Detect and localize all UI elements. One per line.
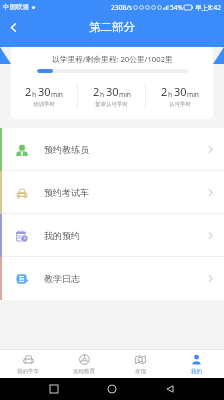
button[interactable]: 发现: [112, 350, 168, 378]
staticText: 中国联通: [3, 3, 29, 11]
button[interactable]: 预约考试车: [0, 171, 224, 214]
staticText: h: [168, 90, 174, 99]
staticText: 教学日志: [44, 273, 80, 284]
staticText: 30: [174, 84, 187, 99]
staticText: 30: [106, 84, 119, 99]
other: Recents: [50, 385, 58, 393]
staticText: 我的预约: [44, 230, 80, 241]
staticText: 远程教育: [73, 368, 95, 375]
staticText: min: [119, 90, 131, 99]
staticText: 2: [25, 84, 32, 99]
button[interactable]: 远程教育: [56, 350, 112, 378]
staticText: 发现: [135, 368, 146, 375]
staticText: 培训学时: [33, 101, 55, 108]
staticText: min: [51, 90, 63, 99]
staticText: 认可学时: [169, 101, 191, 108]
button[interactable]: 我的学车: [0, 350, 56, 378]
button[interactable]: 我的预约: [0, 214, 224, 257]
other: Back: [166, 385, 174, 393]
staticText: 预约教练员: [44, 144, 89, 155]
staticText: h: [100, 90, 106, 99]
staticText: 我的学车: [17, 368, 39, 375]
staticText: 复审认可学时: [95, 101, 128, 108]
staticText: 我的: [191, 368, 202, 375]
button[interactable]: 教学日志: [0, 257, 224, 300]
button[interactable]: Back: [0, 14, 26, 40]
staticText: 30: [38, 84, 51, 99]
button[interactable]: 我的: [168, 350, 224, 378]
staticText: 2: [93, 84, 100, 99]
staticText: h: [32, 90, 38, 99]
staticText: 以学里程/剩余里程: 20公里/1002里: [52, 54, 173, 65]
button[interactable]: 预约教练员: [0, 128, 224, 171]
staticText: 2: [161, 84, 168, 99]
staticText: 230B/s: [111, 3, 132, 12]
other: Home: [108, 385, 116, 393]
staticText: 早上8:42: [195, 3, 221, 12]
staticText: 54%: [170, 3, 183, 12]
staticText: min: [187, 90, 199, 99]
staticText: 预约考试车: [44, 187, 89, 198]
staticText: 第二部分: [89, 20, 135, 34]
